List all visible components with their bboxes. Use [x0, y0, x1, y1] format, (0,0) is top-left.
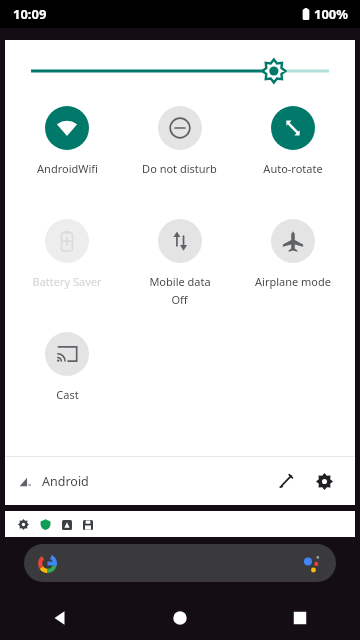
- button[interactable]: Airplane mode: [236, 215, 349, 289]
- button[interactable]: Cast: [11, 328, 123, 402]
- button[interactable]: Back: [0, 596, 120, 640]
- other: Brightness: [31, 58, 329, 84]
- button[interactable]: Search: [24, 544, 336, 582]
- button[interactable]: Do not disturb: [123, 102, 236, 176]
- staticText: Off: [171, 292, 188, 307]
- button[interactable]: Auto-rotate: [236, 102, 349, 176]
- staticText: Auto-rotate: [263, 161, 323, 176]
- staticText: Do not disturb: [142, 161, 217, 176]
- button[interactable]: AndroidWifi: [11, 102, 123, 176]
- button[interactable]: Home: [120, 596, 240, 640]
- staticText: 10:09: [13, 5, 47, 23]
- staticText: Android: [42, 473, 89, 490]
- staticText: Mobile data: [149, 274, 211, 289]
- button[interactable]: Edit: [269, 464, 303, 498]
- staticText: 100%: [314, 5, 349, 23]
- staticText: Airplane mode: [255, 274, 331, 289]
- button[interactable]: [5, 511, 355, 537]
- staticText: Cast: [56, 387, 79, 402]
- button[interactable]: Android: [19, 473, 89, 490]
- button[interactable]: Settings: [307, 464, 341, 498]
- button[interactable]: Recents: [240, 596, 360, 640]
- staticText: AndroidWifi: [37, 161, 98, 176]
- button[interactable]: Mobile data: [123, 215, 236, 307]
- button[interactable]: Brightness: [5, 40, 355, 102]
- staticText: Battery Saver: [32, 274, 102, 289]
- button[interactable]: Battery Saver: [11, 215, 123, 289]
